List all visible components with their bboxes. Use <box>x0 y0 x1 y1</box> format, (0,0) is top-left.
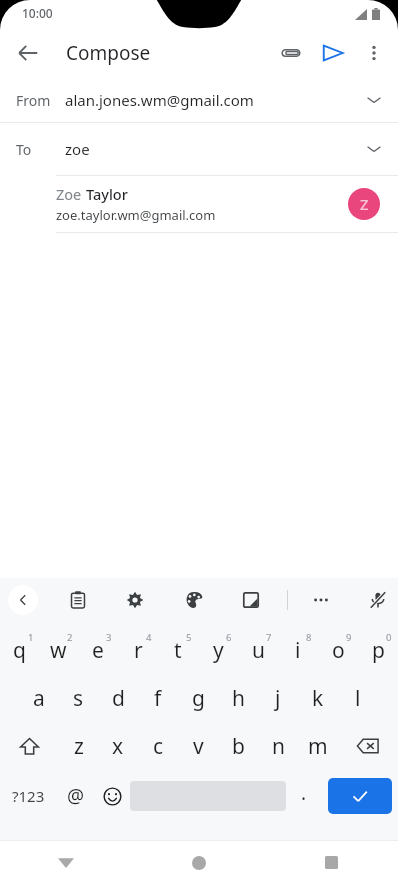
button[interactable]: Shift <box>0 722 59 770</box>
button[interactable]: Back <box>8 33 48 73</box>
button[interactable]: d <box>98 674 138 722</box>
staticText: alan.jones.wm@gmail.com <box>65 90 254 110</box>
staticText: To <box>16 140 32 159</box>
staticText: y <box>213 636 224 665</box>
button[interactable]: Clipboard <box>60 582 96 618</box>
staticText: zoe.taylor.wm@gmail.com <box>56 206 216 224</box>
button[interactable]: ?123 <box>0 770 57 822</box>
button[interactable]: a <box>19 674 58 722</box>
button[interactable]: z <box>59 722 98 770</box>
button[interactable]: From <box>0 78 398 122</box>
staticText: . <box>301 780 307 806</box>
staticText: u <box>252 636 265 665</box>
staticText: Taylor <box>86 184 128 204</box>
button[interactable]: Mute microphone <box>360 582 396 618</box>
staticText: k <box>312 684 324 713</box>
button[interactable]: n <box>258 722 298 770</box>
button[interactable]: e <box>78 626 118 674</box>
button[interactable]: s <box>58 674 98 722</box>
staticText: x <box>112 732 124 761</box>
button[interactable]: q <box>0 626 39 674</box>
button[interactable]: c <box>138 722 178 770</box>
staticText: b <box>232 732 245 761</box>
button[interactable]: m <box>298 722 338 770</box>
staticText: @ <box>67 783 85 809</box>
button[interactable]: Themes <box>176 582 212 618</box>
button[interactable]: Done <box>328 778 392 814</box>
button[interactable]: v <box>178 722 218 770</box>
staticText: Z <box>360 194 369 214</box>
staticText: g <box>192 684 205 713</box>
staticText: n <box>272 732 285 761</box>
staticText: e <box>92 636 104 665</box>
staticText: d <box>112 684 125 713</box>
staticText: v <box>193 732 204 761</box>
staticText: From <box>16 91 51 110</box>
button[interactable]: w <box>39 626 78 674</box>
button[interactable]: More options <box>354 33 394 73</box>
button[interactable]: i <box>278 626 318 674</box>
staticText: c <box>153 732 164 761</box>
staticText: f <box>154 684 162 713</box>
button[interactable]: x <box>98 722 138 770</box>
staticText: i <box>295 636 301 665</box>
staticText: a <box>33 684 45 713</box>
button[interactable]: @ <box>57 770 94 822</box>
staticText: s <box>73 684 84 713</box>
button[interactable]: Expand toolbar <box>8 585 38 615</box>
staticText: Zoe <box>56 184 86 204</box>
button[interactable]: g <box>178 674 218 722</box>
staticText: l <box>355 684 361 713</box>
button[interactable]: u <box>238 626 278 674</box>
button[interactable]: r <box>118 626 158 674</box>
button[interactable]: o <box>318 626 358 674</box>
button[interactable]: j <box>258 674 298 722</box>
button[interactable]: Zoe <box>0 176 398 232</box>
button[interactable]: Recent apps <box>265 841 398 884</box>
staticText: m <box>308 732 328 761</box>
staticText: q <box>13 636 26 665</box>
button[interactable]: Settings <box>117 582 153 618</box>
staticText: 3 <box>106 631 112 644</box>
staticText: r <box>134 636 143 665</box>
staticText: j <box>275 684 281 713</box>
staticText: o <box>332 636 345 665</box>
button[interactable]: Emoji <box>94 770 130 822</box>
button[interactable]: h <box>218 674 258 722</box>
staticText: h <box>232 684 245 713</box>
staticText: 10:00 <box>22 5 53 21</box>
staticText: 5 <box>186 631 192 644</box>
button[interactable]: t <box>158 626 198 674</box>
staticText: t <box>174 636 182 665</box>
staticText: 8 <box>306 631 312 644</box>
button[interactable]: To <box>0 123 398 175</box>
staticText: ?123 <box>12 786 45 806</box>
button[interactable]: More <box>303 582 339 618</box>
staticText: z <box>74 732 84 761</box>
button[interactable]: Home <box>132 841 265 884</box>
staticText: 0 <box>386 631 392 644</box>
button[interactable]: Send <box>312 32 354 74</box>
button[interactable]: p <box>358 626 398 674</box>
staticText: 2 <box>67 631 73 644</box>
button[interactable]: k <box>298 674 338 722</box>
staticText: 9 <box>346 631 352 644</box>
staticText: Compose <box>66 40 151 66</box>
button[interactable]: b <box>218 722 258 770</box>
button[interactable]: . <box>286 770 322 822</box>
button[interactable]: Backspace <box>338 722 398 770</box>
staticText: 6 <box>226 631 232 644</box>
staticText: 1 <box>28 631 34 644</box>
button[interactable]: Back <box>0 841 132 884</box>
staticText: zoe <box>65 139 90 159</box>
staticText: 7 <box>266 631 272 644</box>
button[interactable]: Attach file <box>270 32 312 74</box>
button[interactable]: l <box>338 674 378 722</box>
staticText: 4 <box>146 631 152 644</box>
staticText: p <box>372 636 385 665</box>
button[interactable]: Resize keyboard <box>233 582 269 618</box>
button[interactable]: y <box>198 626 238 674</box>
button[interactable]: f <box>138 674 178 722</box>
staticText: w <box>50 636 67 665</box>
